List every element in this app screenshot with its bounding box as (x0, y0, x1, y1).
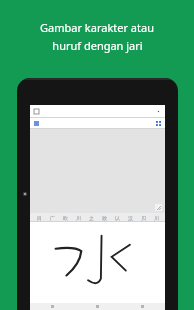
button[interactable]: 汉 (124, 213, 137, 222)
button[interactable]: 川 (72, 213, 85, 222)
staticText: 认 (115, 215, 120, 221)
staticText: 败 (102, 215, 107, 221)
button[interactable]: 川 (150, 213, 163, 222)
button[interactable]: More options (155, 108, 162, 115)
button[interactable]: 之 (85, 213, 98, 222)
button[interactable]: 欧 (59, 213, 72, 222)
button[interactable]: Menu (33, 108, 40, 115)
button[interactable]: Resize (155, 204, 162, 211)
staticText: 之 (89, 215, 94, 221)
staticText: 川 (76, 215, 81, 221)
button[interactable]: 败 (98, 213, 111, 222)
staticText: Gambar karakter atau (40, 20, 154, 35)
staticText: 贝 (141, 215, 146, 221)
button[interactable]: Text field (30, 118, 165, 128)
other: Text field (33, 120, 39, 126)
button[interactable]: Recents (120, 303, 165, 310)
staticText: 汉 (128, 215, 133, 221)
button[interactable]: Handwriting input area (30, 222, 165, 303)
staticText: 广 (50, 215, 55, 221)
button[interactable]: 广 (46, 213, 59, 222)
staticText: 川 (154, 215, 159, 221)
staticText: huruf dengan jari (52, 38, 143, 53)
button[interactable]: 目 (32, 213, 46, 222)
staticText: 目 (37, 215, 42, 221)
button[interactable]: Back (30, 303, 75, 310)
staticText: 欧 (63, 215, 68, 221)
button[interactable]: 认 (111, 213, 124, 222)
button[interactable]: Home (75, 303, 120, 310)
button[interactable]: Apps (155, 120, 162, 127)
button[interactable]: 贝 (137, 213, 150, 222)
